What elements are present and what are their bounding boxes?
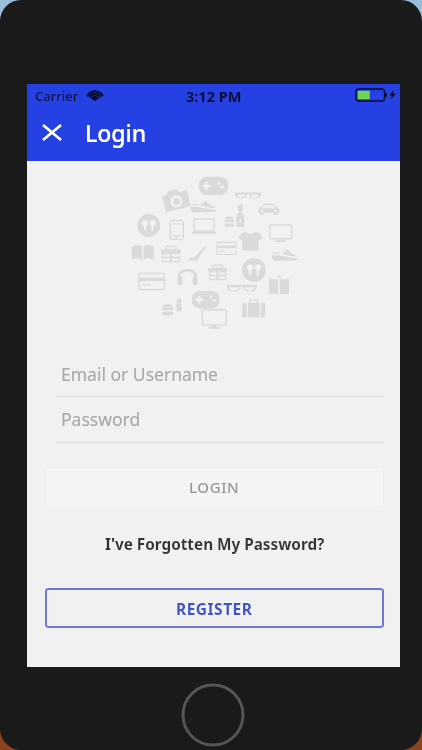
staticText: 3:12 PM — [186, 86, 242, 106]
button[interactable]: LOGIN — [45, 467, 384, 507]
staticText: Password — [61, 407, 141, 431]
staticText: LOGIN — [189, 477, 240, 497]
staticText: Carrier — [35, 87, 79, 105]
button[interactable]: I've Forgotten My Password? — [45, 532, 384, 556]
button[interactable]: Close — [33, 114, 70, 151]
staticText: Email or Username — [61, 362, 218, 386]
staticText: Login — [85, 117, 147, 148]
staticText: I've Forgotten My Password? — [105, 534, 325, 555]
staticText: REGISTER — [176, 598, 253, 619]
button[interactable]: REGISTER — [45, 588, 384, 628]
